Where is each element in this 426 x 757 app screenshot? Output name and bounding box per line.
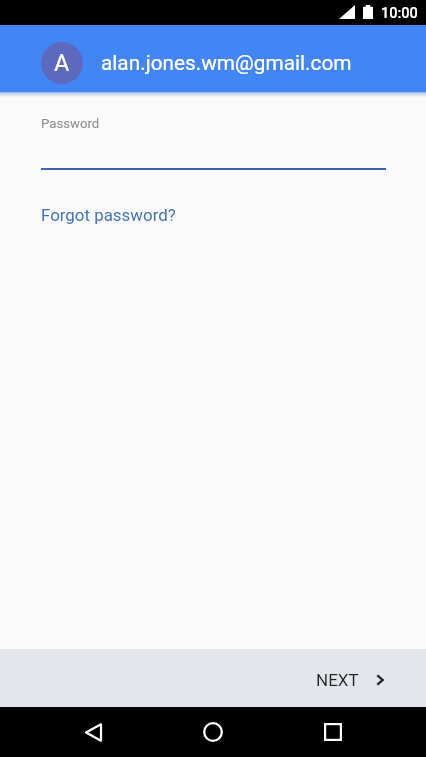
staticText: 10:00 — [381, 5, 418, 22]
staticText: A — [54, 49, 70, 77]
button[interactable]: NEXT — [300, 660, 400, 700]
button[interactable]: Forgot password? — [41, 205, 176, 225]
button[interactable]: Back — [73, 712, 113, 752]
staticText: Forgot password? — [41, 205, 176, 225]
button[interactable]: Recent apps — [313, 712, 353, 752]
staticText: Password — [41, 116, 100, 131]
button[interactable]: Home — [193, 712, 233, 752]
staticText: NEXT — [316, 670, 359, 690]
staticText: alan.jones.wm@gmail.com — [101, 51, 352, 75]
button[interactable]: A — [41, 42, 83, 84]
